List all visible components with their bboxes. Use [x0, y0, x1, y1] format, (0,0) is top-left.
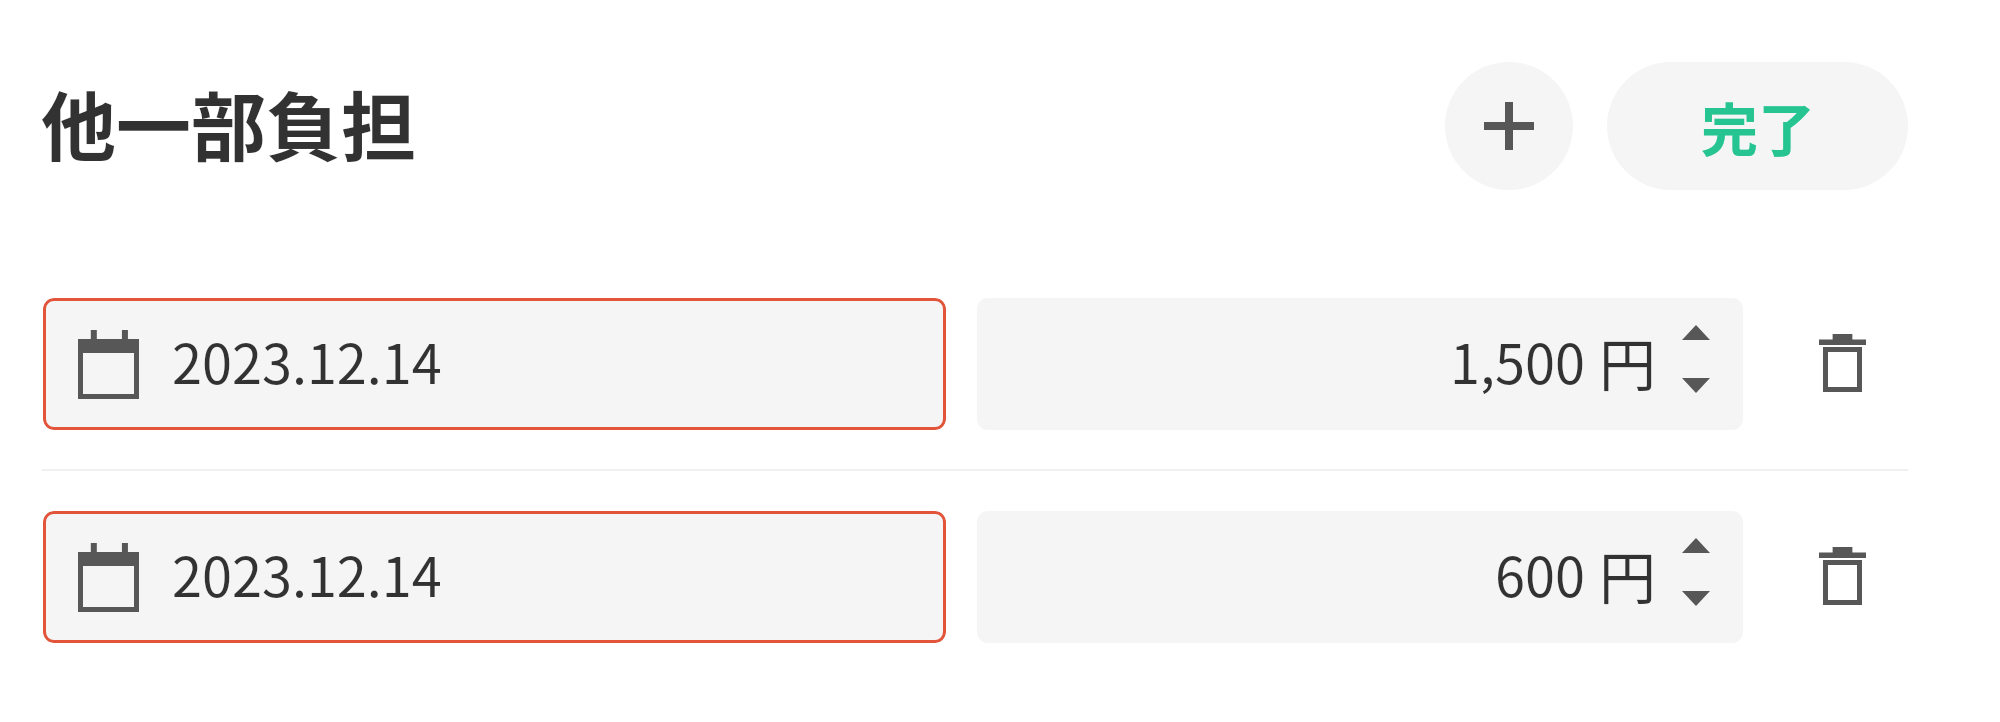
button[interactable]: 完了 [1607, 62, 1908, 190]
staticText: 1,500 [1450, 321, 1585, 399]
staticText: 2023.12.14 [172, 321, 442, 399]
button[interactable]: Add entry [1445, 62, 1573, 190]
staticText: 円 [1599, 320, 1656, 403]
staticText: 600 [1495, 534, 1585, 612]
button[interactable]: Delete [1790, 524, 1894, 628]
staticText: 2023.12.14 [172, 534, 442, 612]
button[interactable]: Delete [1790, 311, 1894, 415]
staticText: 他一部負担 [41, 68, 417, 177]
button[interactable]: 600 [977, 511, 1743, 643]
staticText: 円 [1599, 533, 1656, 616]
staticText: 完了 [1701, 85, 1815, 168]
button[interactable]: 2023.12.14 [43, 298, 946, 430]
button[interactable]: 2023.12.14 [43, 511, 946, 643]
button[interactable]: 1,500 [977, 298, 1743, 430]
